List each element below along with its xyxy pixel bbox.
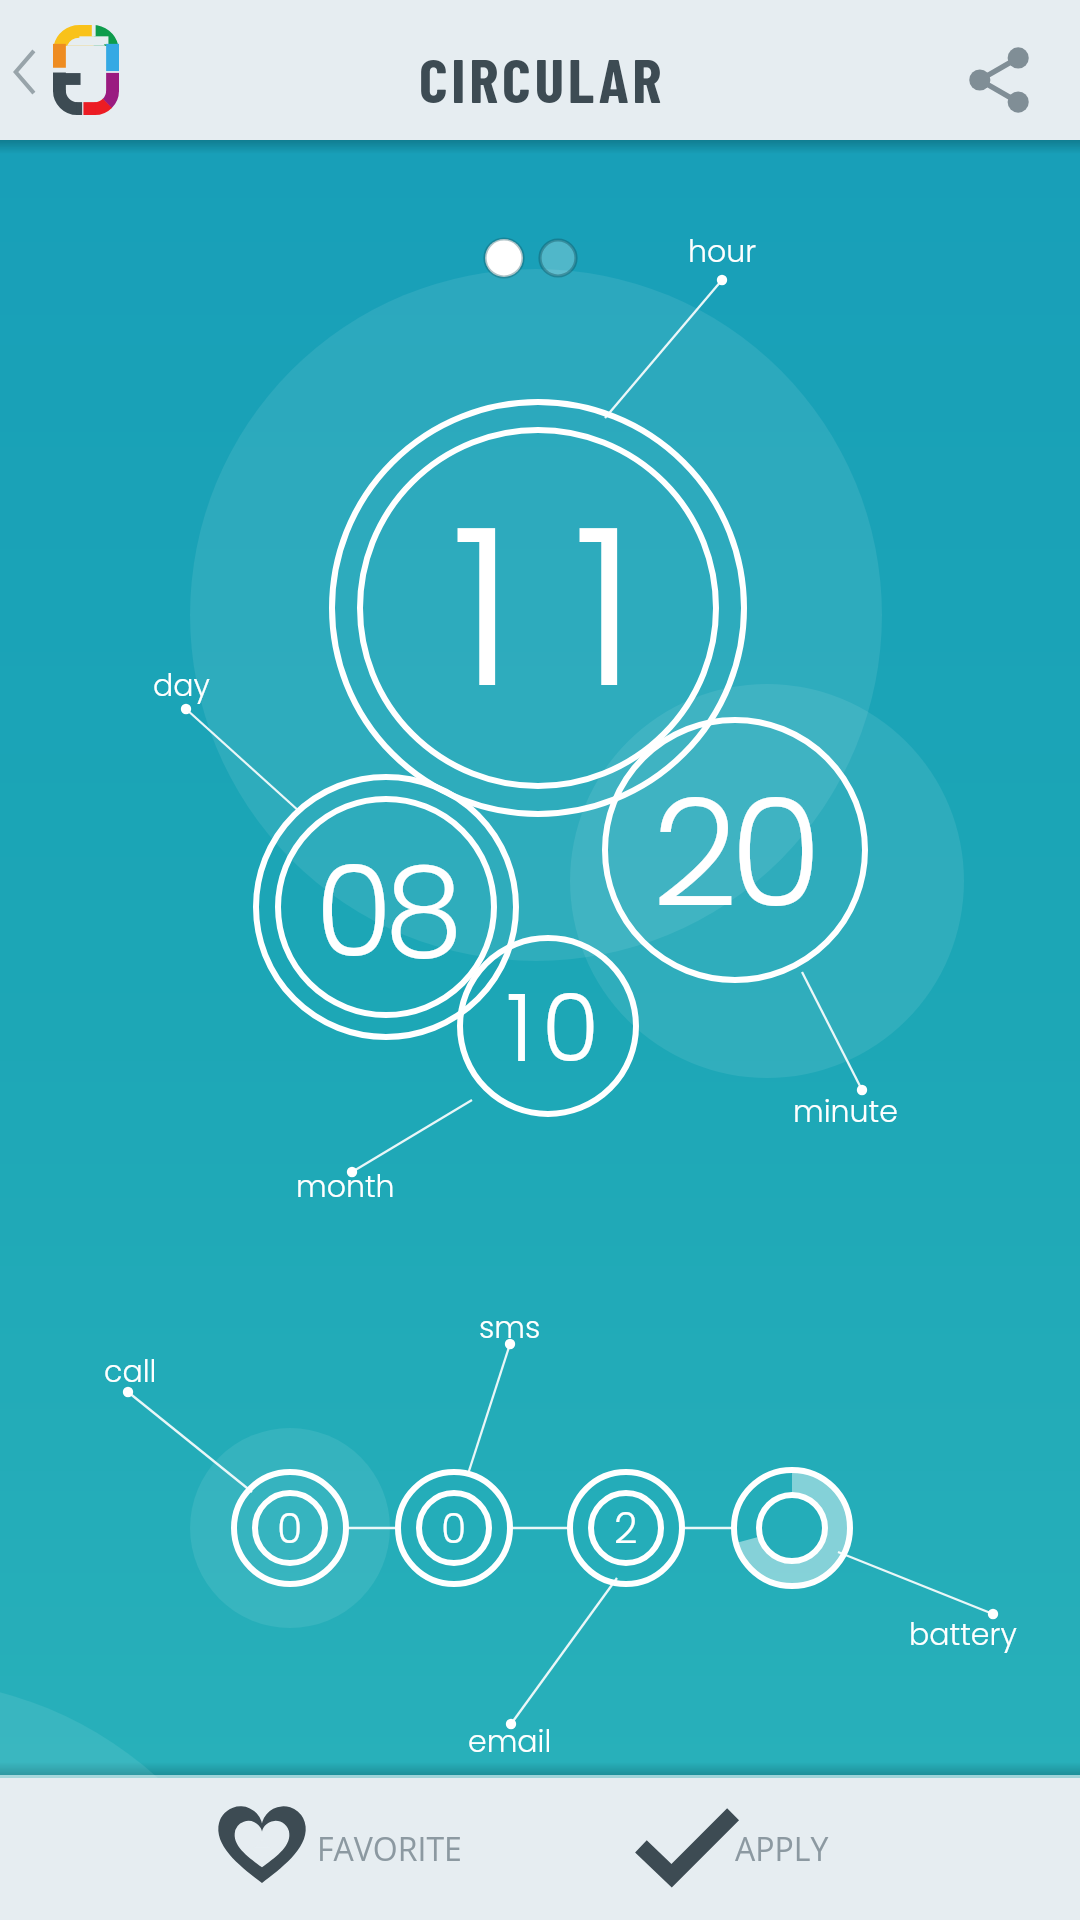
staticText: month: [296, 1166, 395, 1208]
staticText: battery: [909, 1614, 1017, 1656]
staticText: call: [104, 1351, 157, 1393]
staticText: APPLY: [735, 1827, 829, 1871]
staticText: FAVORITE: [317, 1827, 462, 1871]
staticText: 11: [451, 455, 695, 762]
staticText: email: [468, 1721, 552, 1763]
staticText: sms: [479, 1307, 541, 1349]
staticText: 08: [315, 824, 456, 1000]
staticText: hour: [688, 231, 757, 273]
button[interactable]: Share: [950, 0, 1080, 140]
button[interactable]: FAVORITE: [218, 1778, 518, 1920]
button[interactable]: APPLY: [634, 1778, 854, 1920]
staticText: day: [153, 665, 210, 707]
staticText: 10: [506, 962, 608, 1094]
staticText: minute: [793, 1091, 898, 1133]
staticText: 20: [652, 748, 815, 958]
staticText: 0: [441, 1500, 467, 1557]
button[interactable]: Back: [0, 0, 46, 140]
staticText: 0: [277, 1500, 303, 1557]
staticText: CIRCULAR: [419, 41, 666, 115]
staticText: 2: [614, 1500, 638, 1557]
button[interactable]: App logo: [48, 0, 124, 140]
